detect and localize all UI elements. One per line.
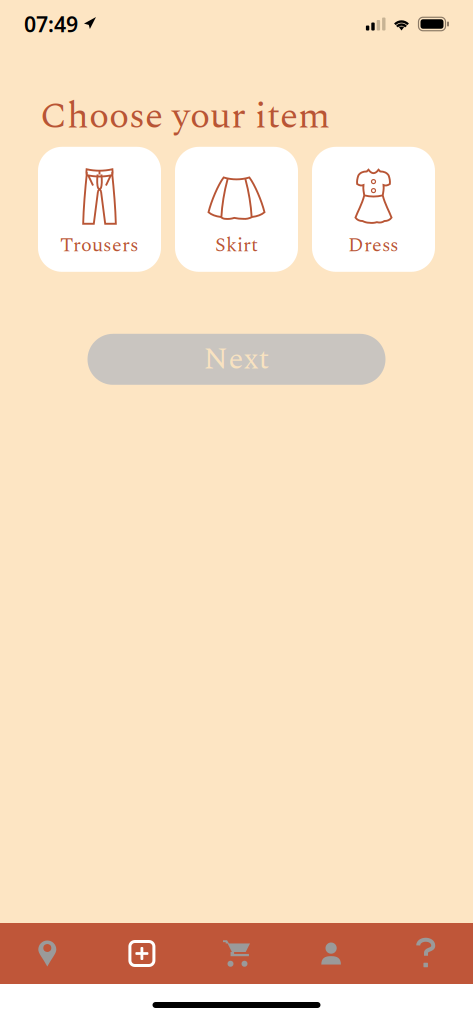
- button[interactable]: Profile: [284, 923, 378, 984]
- button[interactable]: Trousers: [38, 147, 161, 272]
- button[interactable]: Help: [378, 923, 473, 984]
- button[interactable]: Next: [87, 334, 385, 385]
- staticText: Choose your item: [40, 88, 330, 145]
- button[interactable]: Map: [0, 923, 95, 984]
- button[interactable]: Skirt: [175, 147, 298, 272]
- staticText: Next: [203, 336, 269, 383]
- staticText: Trousers: [60, 230, 139, 260]
- staticText: Skirt: [215, 230, 258, 260]
- button[interactable]: Dress: [312, 147, 435, 272]
- staticText: Dress: [348, 230, 399, 260]
- staticText: 07:49: [24, 10, 78, 38]
- button[interactable]: Add item: [95, 923, 189, 984]
- button[interactable]: Cart: [189, 923, 284, 984]
